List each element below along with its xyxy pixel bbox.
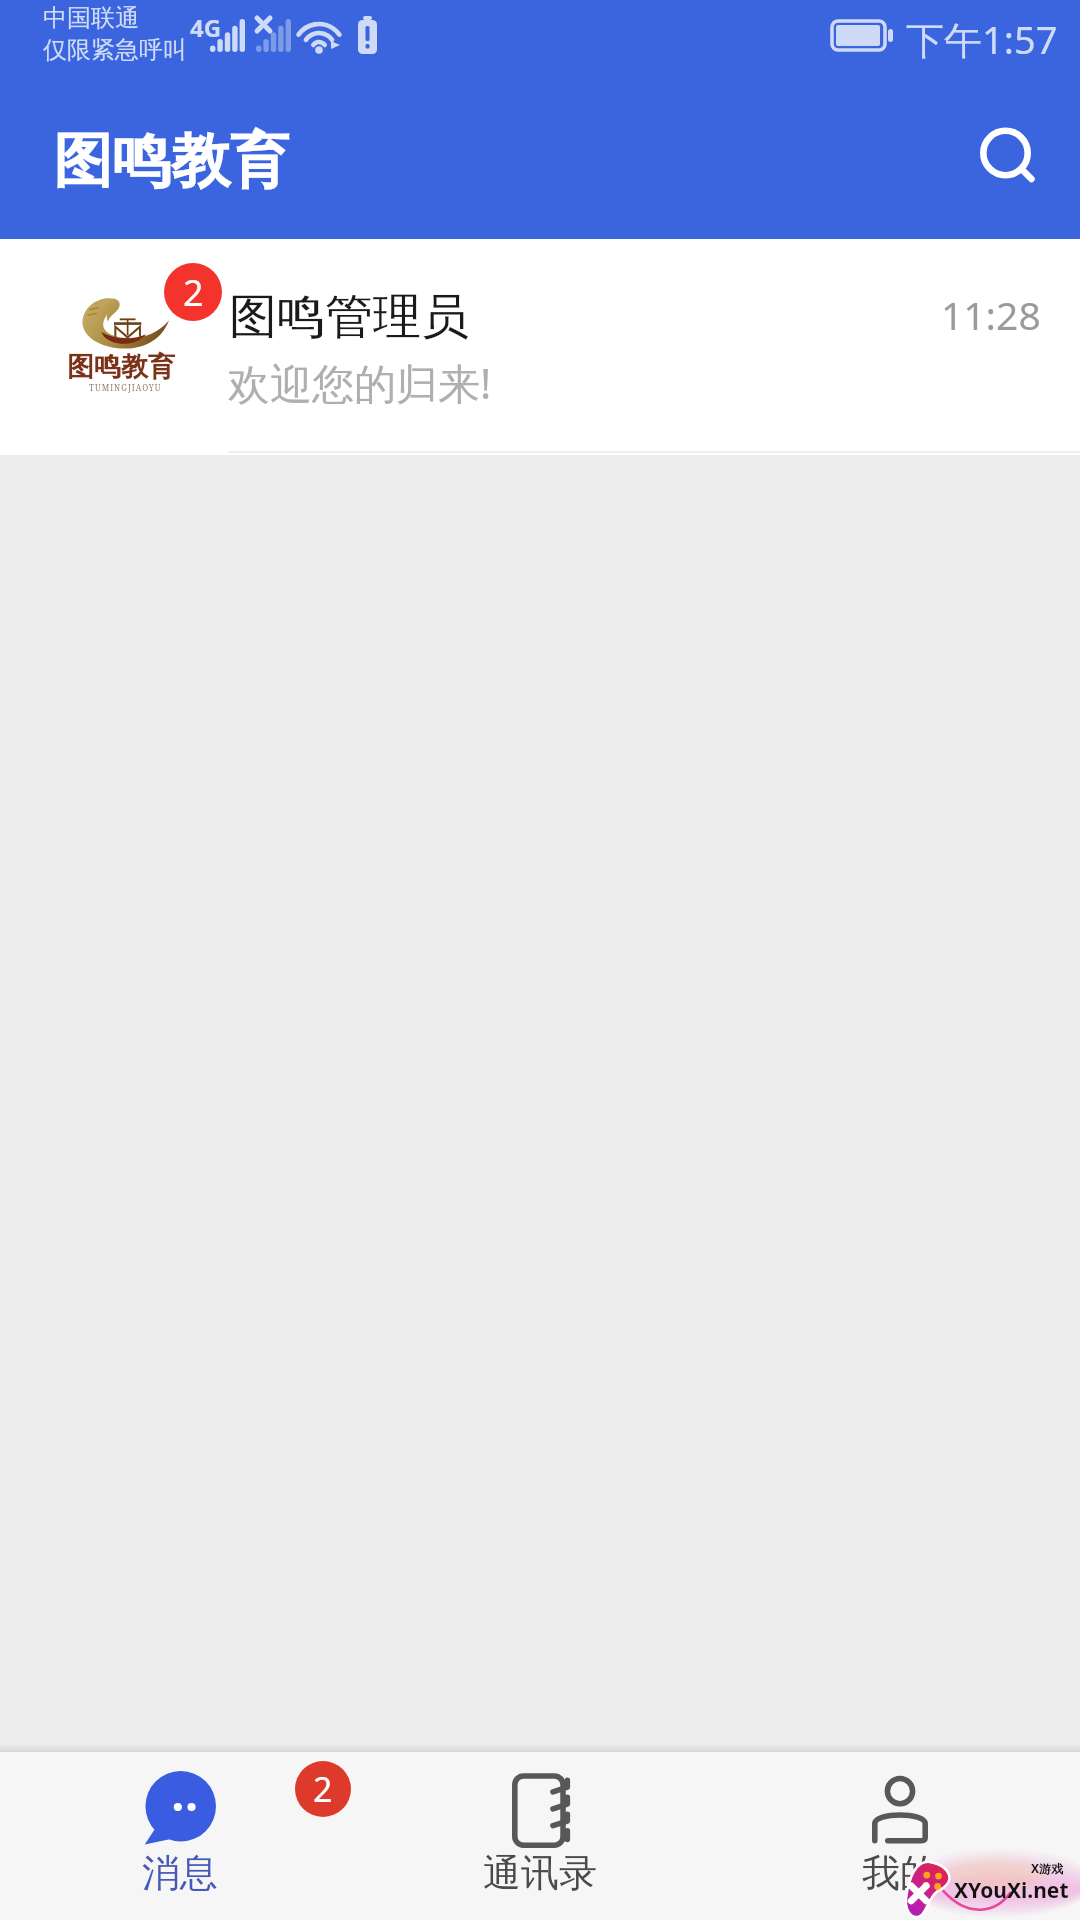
staticText: 中国联通 (43, 3, 139, 33)
staticText: 2 (313, 1766, 333, 1812)
staticText: 2 (183, 268, 204, 317)
staticText: TUMINGJIAOYU (89, 382, 162, 393)
staticText: X游戏 (1031, 1860, 1064, 1876)
staticText: 图鸣管理员 (229, 287, 469, 347)
staticText: 11:28 (941, 288, 1041, 341)
staticText: 下午1:57 (906, 13, 1058, 65)
staticText: 消息 (142, 1849, 218, 1897)
staticText: 通讯录 (483, 1849, 597, 1897)
staticText: 图鸣教育 (67, 350, 175, 384)
staticText: 4G (190, 11, 222, 44)
button[interactable]: 图鸣教育 (0, 239, 1080, 455)
button[interactable]: 消息 (0, 1752, 360, 1920)
staticText: 图鸣教育 (53, 124, 289, 198)
staticText: XYouXi.net (954, 1876, 1069, 1905)
staticText: 我的 (862, 1849, 938, 1897)
button[interactable]: 我的 (720, 1752, 1080, 1920)
button[interactable]: Search (958, 105, 1054, 201)
button[interactable]: 通讯录 (360, 1752, 720, 1920)
staticText: 仅限紧急呼叫 (43, 35, 187, 65)
staticText: 欢迎您的归来! (228, 354, 492, 411)
